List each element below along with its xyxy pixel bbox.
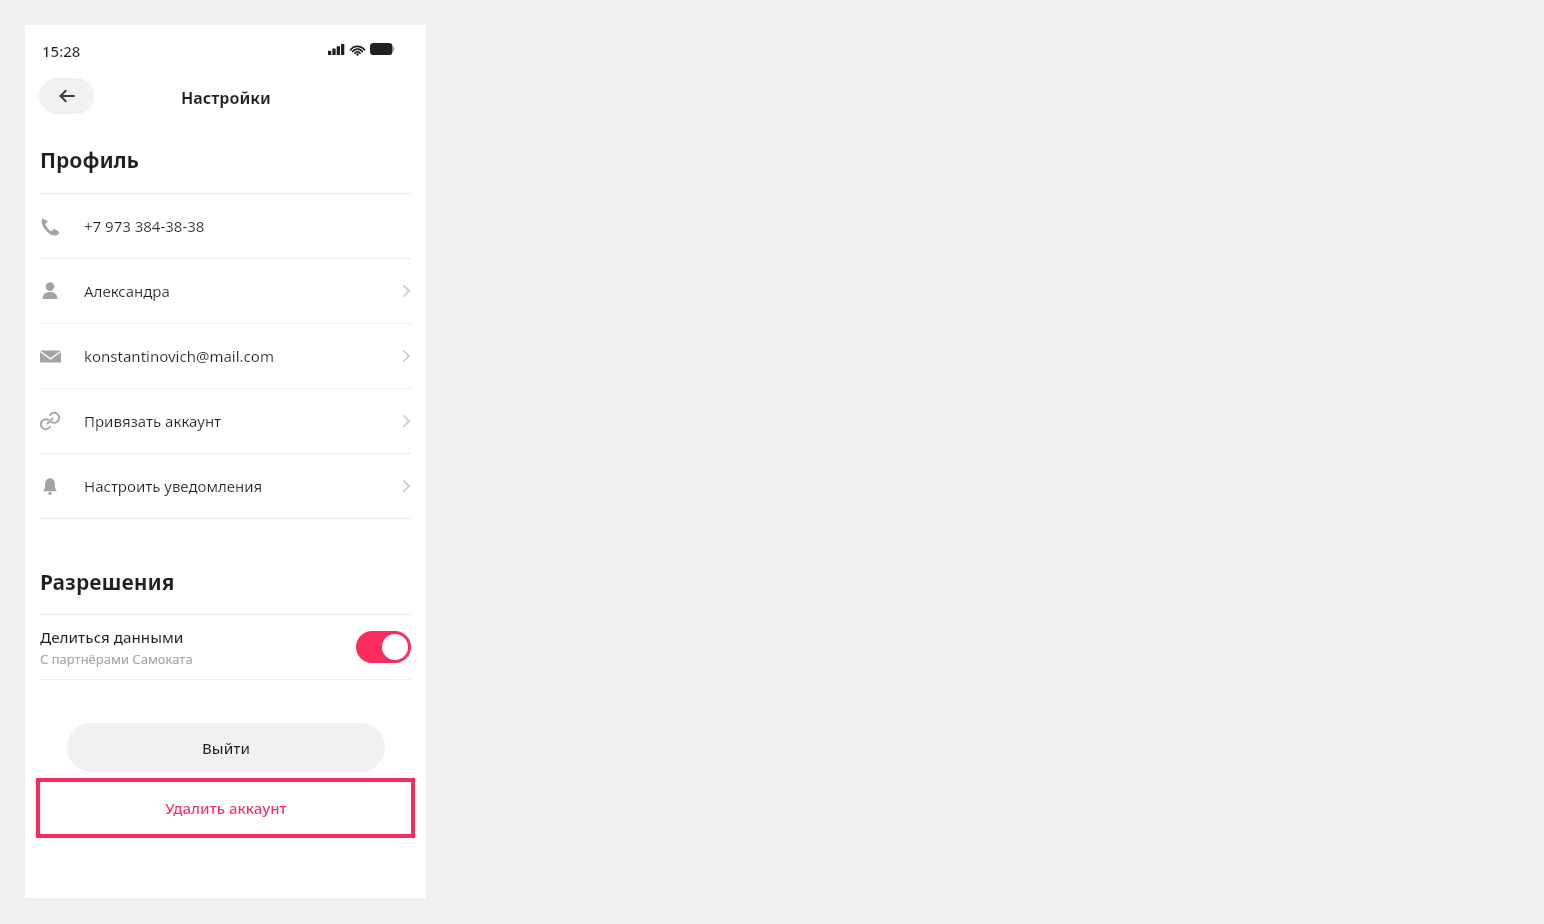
staticText: +7 973 384-38-38 [84, 216, 411, 236]
staticText: Настроить уведомления [84, 476, 402, 496]
button[interactable]: Назад [39, 78, 94, 114]
staticText: С партнёрами Самоката [40, 650, 193, 668]
staticText: Делиться данными [40, 627, 184, 647]
staticText: Настройки [181, 87, 271, 109]
button[interactable]: Делиться данными [25, 615, 426, 679]
staticText: Александра [84, 281, 402, 301]
staticText: Разрешения [40, 568, 175, 597]
button[interactable]: Настроить уведомления [25, 454, 426, 518]
staticText: 15:28 [42, 41, 81, 61]
button[interactable]: Удалить аккаунт [36, 778, 415, 838]
button[interactable]: konstantinovich@mail.com [25, 324, 426, 388]
staticText: konstantinovich@mail.com [84, 346, 402, 366]
button[interactable]: Привязать аккаунт [25, 389, 426, 453]
button[interactable]: Выйти [67, 723, 385, 772]
button[interactable]: Александра [25, 259, 426, 323]
staticText: Профиль [40, 146, 140, 175]
staticText: Привязать аккаунт [84, 411, 402, 431]
button[interactable]: Делиться данными [356, 631, 411, 663]
staticText: Выйти [202, 738, 250, 758]
staticText: Удалить аккаунт [165, 798, 287, 818]
button[interactable]: +7 973 384-38-38 [25, 194, 426, 258]
